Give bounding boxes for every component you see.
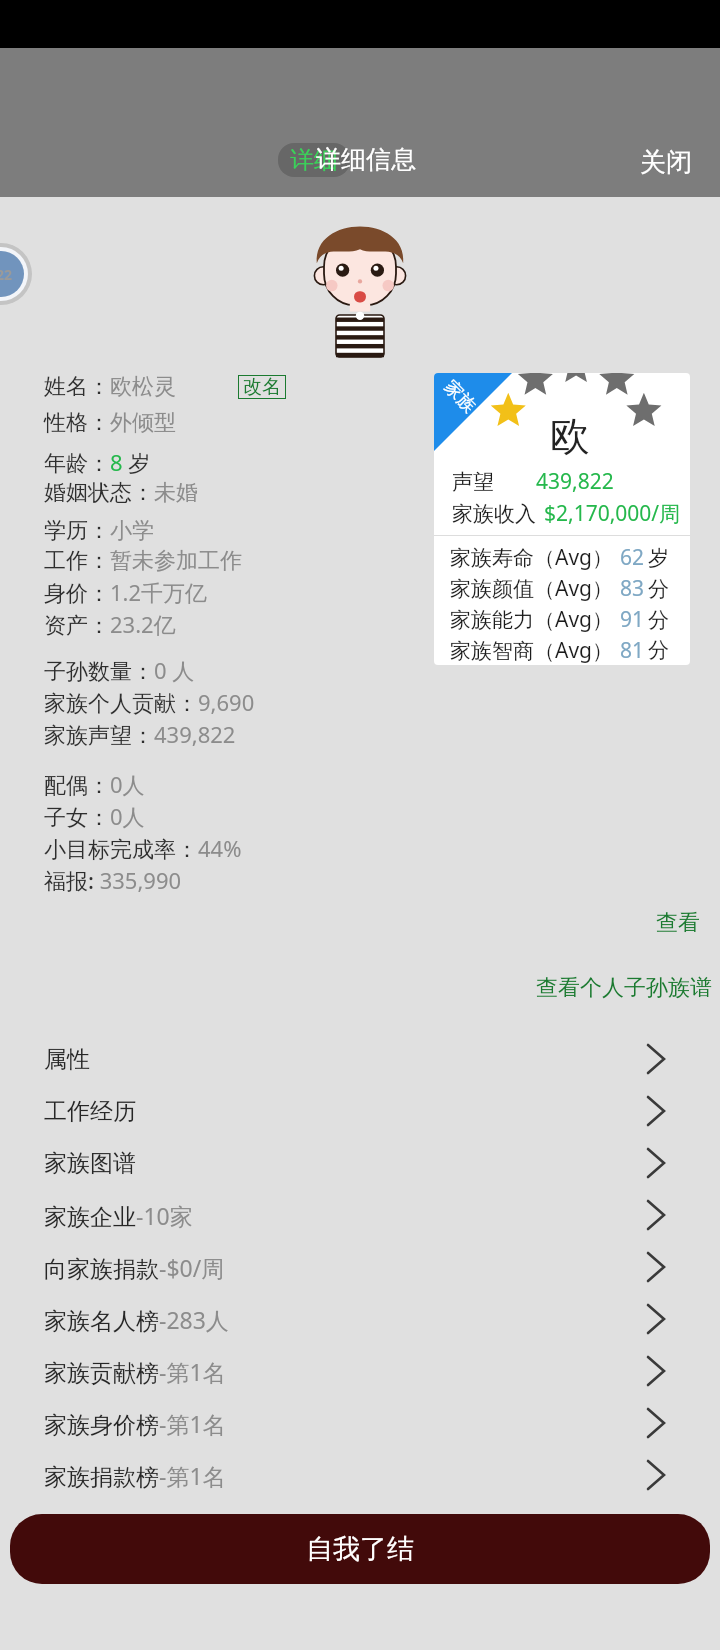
staticText: 91 [620,605,645,634]
button[interactable]: 家族企业-10家 [0,1189,720,1241]
staticText: 子孙数量：0 人 [44,655,195,685]
button[interactable]: 查看个人子孙族谱 [524,968,720,1008]
staticText: 欧 [550,411,590,461]
staticText: 家族图谱 [44,1149,136,1178]
staticText: $2,170,000/周 [544,499,681,528]
staticText: 查看个人子孙族谱 [536,974,712,1002]
button[interactable]: 改名 [238,375,286,399]
button[interactable]: 工作经历 [0,1085,720,1137]
staticText: 性格：外倾型 [44,409,176,437]
staticText: 福报: 335,990 [44,865,182,895]
staticText: 家族能力（Avg） [450,605,614,634]
button[interactable]: 向家族捐款-$0/周 [0,1241,720,1293]
staticText: 分 [648,637,669,663]
button[interactable]: 家族贡献榜-第1名 [0,1345,720,1397]
staticText: 子女：0人 [44,801,145,831]
staticText: 年龄：8 岁 [44,447,151,477]
staticText: 家族捐款榜-第1名 [44,1460,226,1491]
staticText: 婚姻状态：未婚 [44,479,198,507]
staticText: 家族 [439,376,481,417]
staticText: 岁 [648,545,669,571]
staticText: 分 [648,607,669,633]
staticText: 自我了结 [306,1532,414,1566]
staticText: 工作经历 [44,1097,136,1126]
staticText: 83 [620,574,645,603]
staticText: 详细信息 [316,144,416,175]
button[interactable]: 家族身价榜-第1名 [0,1397,720,1449]
button[interactable]: 自我了结 [10,1514,710,1584]
button[interactable]: 欧 [434,373,690,665]
staticText: 家族贡献榜-第1名 [44,1356,226,1387]
button[interactable]: 家族名人榜-283人 [0,1293,720,1345]
staticText: 家族收入 [452,501,536,527]
staticText: 22 [0,265,13,284]
staticText: 关闭 [640,146,692,179]
staticText: 家族身价榜-第1名 [44,1408,226,1439]
button[interactable]: 查看 [644,903,720,943]
staticText: 姓名：欧松灵 [44,373,176,401]
button[interactable]: 详细 [278,143,350,177]
staticText: 查看 [656,909,700,937]
staticText: 家族智商（Avg） [450,636,614,664]
staticText: 家族声望：439,822 [44,719,236,749]
staticText: 学历：小学 [44,517,154,545]
staticText: 小目标完成率：44% [44,833,242,863]
button[interactable]: 家族捐款榜-第1名 [0,1449,720,1501]
button[interactable]: 关闭 [640,146,720,197]
staticText: 家族企业-10家 [44,1200,193,1231]
staticText: 配偶：0人 [44,769,145,799]
staticText: 身价：1.2千万亿 [44,577,208,607]
button[interactable]: 家族图谱 [0,1137,720,1189]
staticText: 资产：23.2亿 [44,609,176,639]
staticText: 工作：暂未参加工作 [44,547,242,575]
staticText: 62 [620,543,645,572]
staticText: 家族个人贡献：9,690 [44,687,255,717]
staticText: 声望 [452,469,494,495]
staticText: 家族颜值（Avg） [450,574,614,603]
staticText: 81 [620,636,645,664]
staticText: 家族名人榜-283人 [44,1304,229,1335]
staticText: 详细 [290,145,338,175]
staticText: 向家族捐款-$0/周 [44,1252,225,1283]
staticText: 属性 [44,1045,90,1074]
staticText: 439,822 [536,467,614,496]
staticText: 改名 [243,375,281,399]
button[interactable]: 属性 [0,1033,720,1085]
staticText: 家族寿命（Avg） [450,543,614,572]
staticText: 分 [648,576,669,602]
